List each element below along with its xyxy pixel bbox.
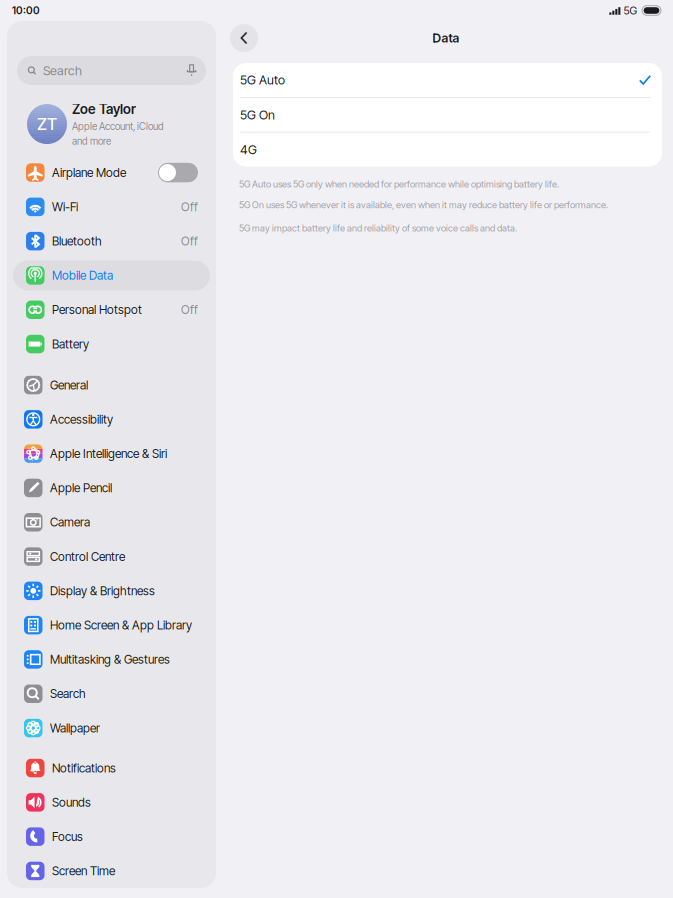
- staticText: 5G On: [240, 107, 275, 122]
- button[interactable]: Battery: [13, 329, 210, 359]
- staticText: Home Screen & App Library: [50, 618, 192, 632]
- button[interactable]: Bluetooth: [13, 226, 210, 256]
- button[interactable]: Focus: [13, 822, 210, 852]
- staticText: and more: [72, 135, 111, 147]
- staticText: Control Centre: [50, 549, 125, 564]
- staticText: Off: [181, 302, 198, 317]
- staticText: 10:00: [12, 4, 40, 17]
- button[interactable]: Display & Brightness: [11, 576, 212, 606]
- button[interactable]: Camera: [11, 507, 212, 537]
- button[interactable]: Notifications: [13, 753, 210, 783]
- staticText: Camera: [50, 515, 90, 529]
- button[interactable]: Apple Pencil: [11, 473, 212, 503]
- button[interactable]: Airplane Mode: [13, 158, 210, 188]
- staticText: Accessibility: [50, 412, 113, 427]
- button[interactable]: Wallpaper: [11, 713, 212, 743]
- staticText: Sounds: [52, 795, 91, 810]
- staticText: Mobile Data: [52, 268, 113, 283]
- staticText: Airplane Mode: [52, 165, 126, 180]
- staticText: Apple Intelligence & Siri: [50, 446, 167, 461]
- button[interactable]: Apple Intelligence & Siri: [11, 439, 212, 469]
- staticText: General: [50, 378, 88, 392]
- staticText: Screen Time: [52, 864, 115, 878]
- staticText: 4G: [240, 142, 257, 157]
- staticText: Off: [181, 234, 198, 248]
- staticText: Focus: [52, 829, 83, 844]
- staticText: 5G: [623, 4, 637, 17]
- staticText: 5G may impact battery life and reliabili…: [239, 222, 517, 234]
- staticText: Off: [181, 200, 198, 214]
- button[interactable]: ZT: [7, 98, 216, 150]
- button[interactable]: Back: [230, 24, 258, 52]
- staticText: Apple Account, iCloud: [72, 120, 164, 132]
- staticText: Wi-Fi: [52, 200, 78, 214]
- button[interactable]: Personal Hotspot: [13, 295, 210, 325]
- button[interactable]: Search: [11, 679, 212, 709]
- button[interactable]: Control Centre: [11, 541, 212, 571]
- staticText: Search: [43, 63, 82, 78]
- button[interactable]: 5G On: [233, 98, 662, 132]
- staticText: Search: [50, 686, 86, 701]
- button[interactable]: Mobile Data: [13, 260, 210, 290]
- button[interactable]: General: [11, 370, 212, 400]
- staticText: Bluetooth: [52, 234, 102, 248]
- button[interactable]: Wi-Fi: [13, 192, 210, 222]
- button[interactable]: Sounds: [13, 787, 210, 817]
- staticText: 5G Auto: [240, 72, 285, 88]
- staticText: Wallpaper: [50, 721, 100, 735]
- staticText: Display & Brightness: [50, 584, 155, 598]
- button[interactable]: 5G Auto: [233, 63, 662, 97]
- staticText: ZT: [37, 114, 57, 134]
- staticText: Multitasking & Gestures: [50, 652, 170, 667]
- staticText: 5G Auto uses 5G only when needed for per…: [239, 179, 559, 190]
- staticText: Personal Hotspot: [52, 302, 142, 317]
- staticText: Notifications: [52, 761, 116, 775]
- button[interactable]: Home Screen & App Library: [11, 610, 212, 640]
- button[interactable]: Screen Time: [13, 856, 210, 886]
- staticText: 5G On uses 5G whenever it is available, …: [239, 199, 608, 210]
- staticText: Battery: [52, 337, 89, 351]
- staticText: Apple Pencil: [50, 481, 112, 495]
- button[interactable]: 4G: [233, 133, 662, 167]
- staticText: Data: [432, 30, 459, 45]
- staticText: Zoe Taylor: [72, 101, 136, 117]
- button[interactable]: Accessibility: [11, 404, 212, 434]
- button[interactable]: Multitasking & Gestures: [11, 644, 212, 674]
